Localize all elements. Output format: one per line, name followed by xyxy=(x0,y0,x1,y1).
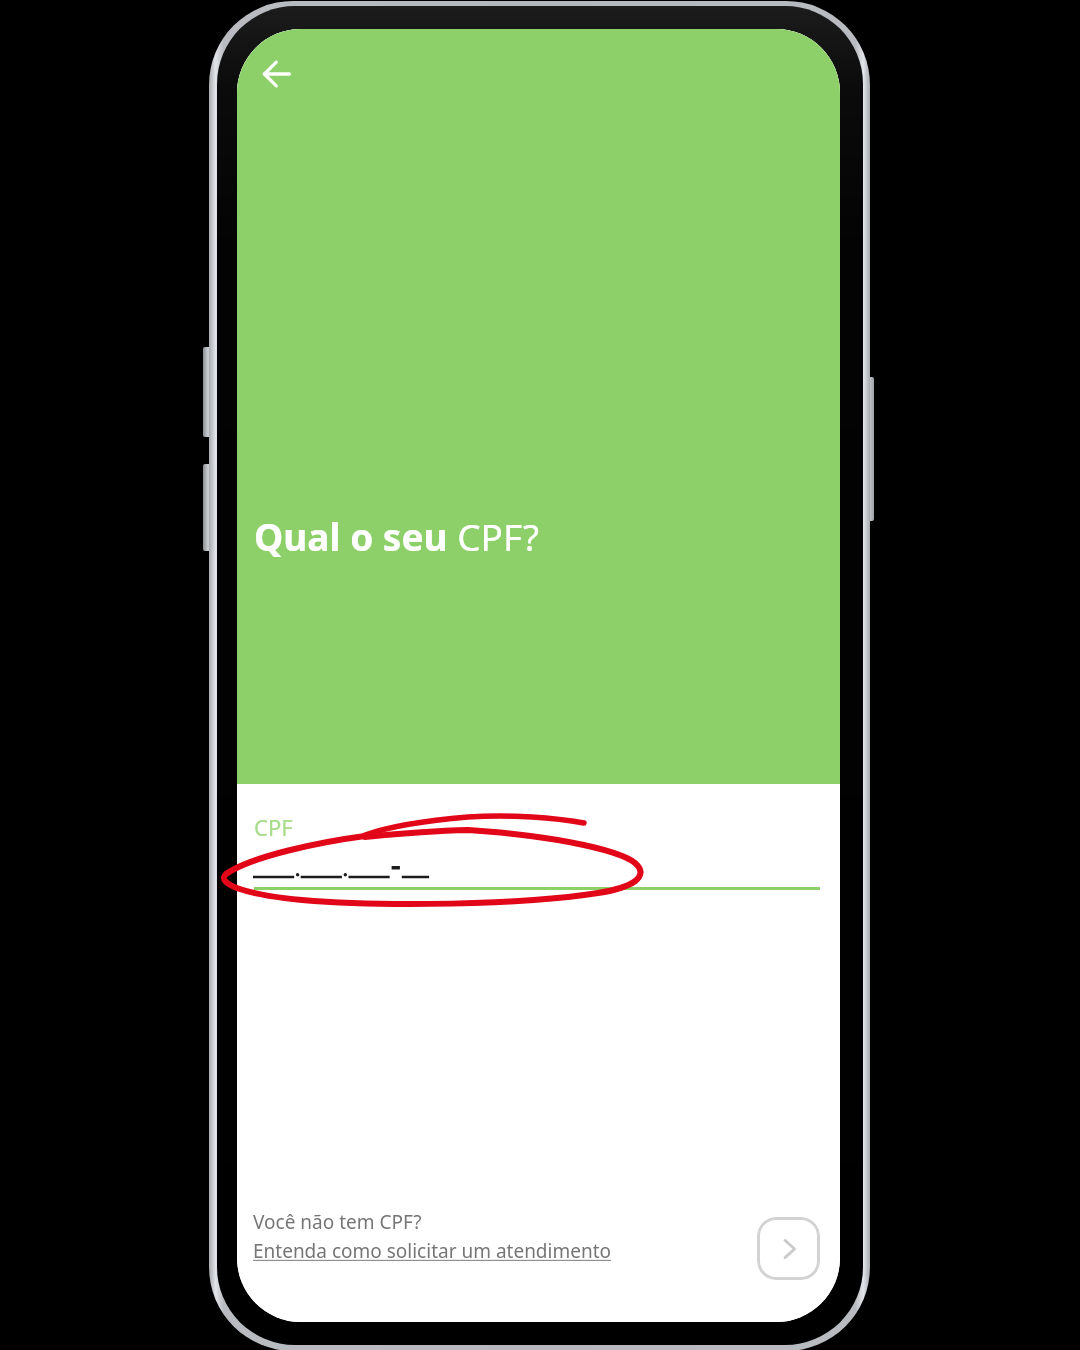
button[interactable]: Continuar xyxy=(757,1217,820,1280)
staticText: Qual o seu CPF? xyxy=(254,511,539,561)
button[interactable]: Entenda como solicitar um atendimento xyxy=(253,1238,612,1264)
button[interactable]: Back xyxy=(251,48,303,100)
staticText: CPF xyxy=(254,812,293,842)
staticText: Você não tem CPF? xyxy=(253,1209,422,1235)
